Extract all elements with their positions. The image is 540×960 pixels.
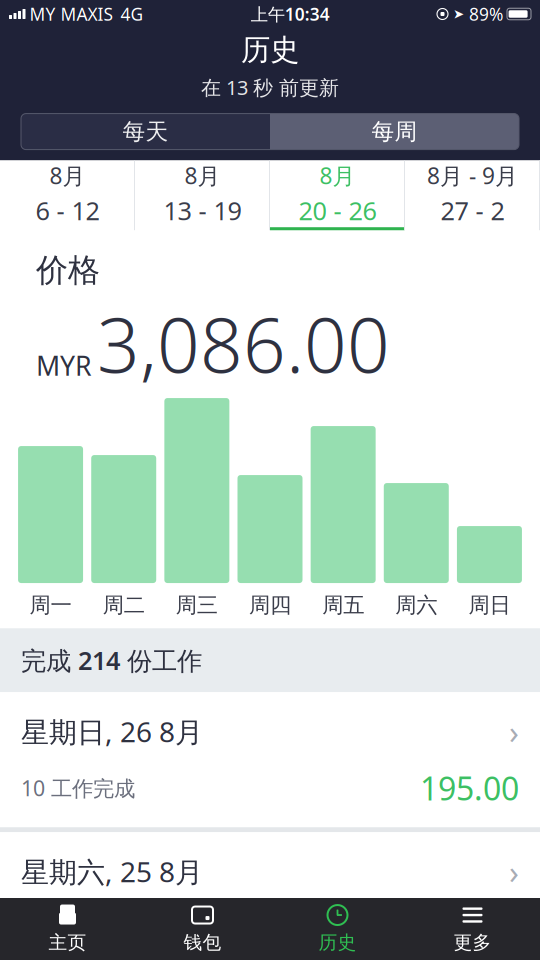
button[interactable]: 8月 [135, 161, 270, 231]
button[interactable]: 更多 [405, 898, 540, 960]
staticText: 8月 [184, 160, 220, 191]
staticText: 主页 [48, 931, 86, 954]
button[interactable]: 8月 [0, 161, 135, 231]
staticText: 周日 [468, 592, 510, 618]
staticText: 8月 [319, 160, 355, 191]
staticText: 6 - 12 [35, 194, 99, 227]
staticText: 周三 [176, 592, 218, 618]
staticText: 上午10:34 [251, 2, 330, 25]
staticText: › [509, 850, 519, 893]
staticText: 每天 [122, 118, 168, 145]
staticText: MYR [36, 348, 92, 383]
staticText: 在 13 秒 前更新 [201, 74, 339, 101]
staticText: 更多 [453, 931, 491, 954]
staticText: 周五 [322, 592, 364, 618]
button[interactable]: 星期日, 26 8月 [0, 692, 540, 827]
staticText: › [509, 710, 519, 753]
button[interactable]: 8月 - 9月 [405, 161, 540, 231]
staticText: 20 - 26 [298, 194, 376, 227]
staticText: 3,086.00 [97, 294, 390, 393]
staticText: 完成 214 份工作 [21, 643, 202, 677]
staticText: 27 - 2 [440, 194, 504, 227]
button[interactable]: 每周 [270, 114, 519, 150]
button[interactable]: 钱包 [135, 898, 270, 960]
staticText: 星期六, 25 8月 [21, 853, 203, 890]
staticText: 89% [469, 2, 503, 25]
button[interactable]: 主页 [0, 898, 135, 960]
staticText: 价格 [36, 251, 100, 290]
staticText: MY MAXIS [29, 2, 113, 25]
button[interactable]: 每天 [21, 114, 270, 150]
staticText: 钱包 [183, 931, 221, 954]
staticText: 195.00 [420, 767, 519, 809]
staticText: ➤ [453, 6, 464, 21]
staticText: 13 - 19 [163, 194, 241, 227]
button[interactable]: 星期六, 25 8月 [0, 832, 540, 911]
staticText: 4G [120, 2, 143, 25]
staticText: 周四 [249, 592, 291, 618]
staticText: 10 工作完成 [21, 774, 135, 802]
staticText: 周一 [30, 592, 72, 618]
staticText: 历史 [241, 32, 299, 68]
staticText: 历史 [318, 931, 356, 954]
staticText: 每周 [371, 118, 417, 145]
staticText: 星期日, 26 8月 [21, 713, 203, 750]
staticText: 周二 [103, 592, 145, 618]
staticText: 8月 [49, 160, 85, 191]
staticText: 周六 [395, 592, 437, 618]
button[interactable]: 8月 [270, 161, 405, 231]
staticText: 8月 - 9月 [427, 160, 518, 191]
button[interactable]: 历史 [270, 898, 405, 960]
